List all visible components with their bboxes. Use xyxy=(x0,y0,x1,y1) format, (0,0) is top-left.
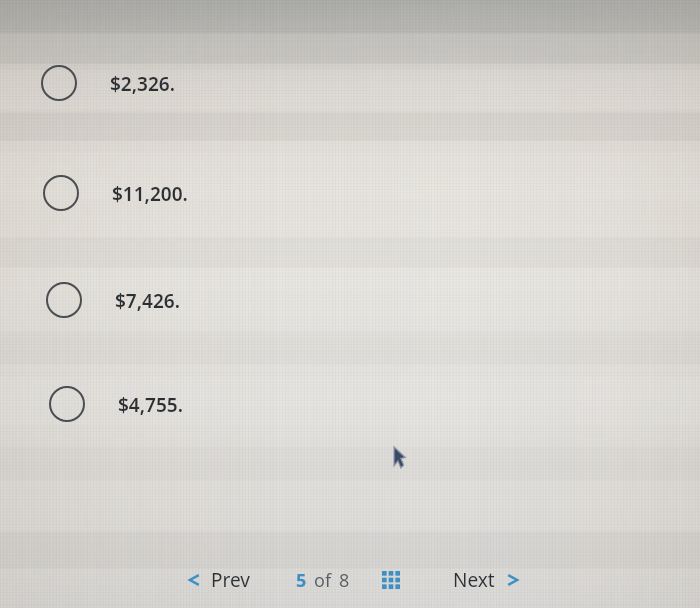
staticText: $7,426. xyxy=(115,288,180,314)
button[interactable]: Next xyxy=(449,563,525,597)
button[interactable]: Prev xyxy=(182,563,254,597)
button[interactable]: Question overview grid xyxy=(376,565,406,595)
staticText: 5 xyxy=(296,568,307,593)
staticText: $11,200. xyxy=(112,181,188,207)
button[interactable]: $11,200. xyxy=(0,136,700,241)
button[interactable]: $2,326. xyxy=(0,31,700,136)
staticText: Prev xyxy=(211,567,250,593)
staticText: Next xyxy=(453,567,495,593)
staticText: $4,755. xyxy=(118,392,183,418)
button[interactable]: $7,426. xyxy=(0,241,700,346)
staticText: of xyxy=(314,568,332,593)
staticText: $2,326. xyxy=(110,71,175,97)
staticText: 8 xyxy=(339,568,350,593)
button[interactable]: $4,755. xyxy=(0,346,700,451)
